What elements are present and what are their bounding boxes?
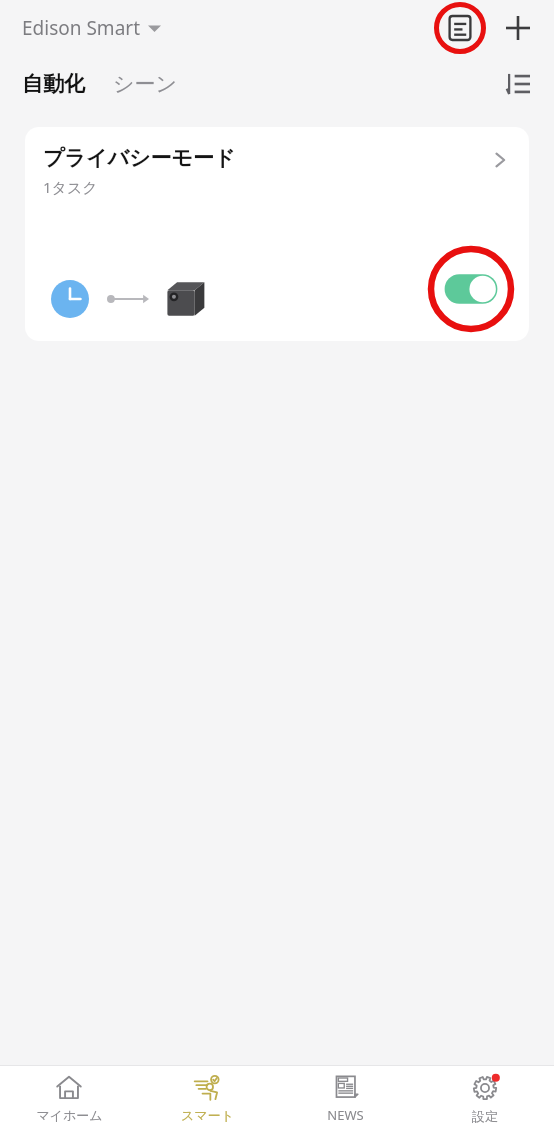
staticText: 1タスク <box>43 177 98 197</box>
button[interactable]: 設定 <box>415 1066 554 1130</box>
button[interactable]: シーン <box>109 65 181 103</box>
button[interactable]: Enable automation <box>427 245 515 333</box>
button[interactable]: 自動化 <box>18 65 89 103</box>
staticText: マイホーム <box>36 1107 103 1123</box>
staticText: NEWS <box>327 1106 364 1124</box>
button[interactable]: NEWS <box>276 1066 415 1130</box>
button[interactable]: マイホーム <box>0 1066 138 1130</box>
staticText: 自動化 <box>22 71 85 97</box>
staticText: Edison Smart <box>22 15 140 41</box>
button[interactable]: Sort <box>498 64 538 104</box>
button[interactable]: プライバシーモード <box>25 127 529 341</box>
staticText: 設定 <box>472 1108 498 1124</box>
staticText: プライバシーモード <box>43 145 236 171</box>
staticText: スマート <box>181 1107 234 1123</box>
button[interactable]: Open automation <box>477 137 523 183</box>
button[interactable]: Automation log <box>434 2 486 54</box>
button[interactable]: Add <box>496 6 540 50</box>
button[interactable]: スマート <box>138 1066 276 1130</box>
staticText: シーン <box>113 71 177 97</box>
button[interactable]: Edison Smart <box>18 11 165 45</box>
